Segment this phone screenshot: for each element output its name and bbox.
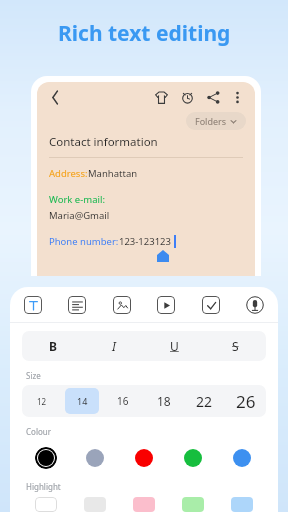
button[interactable]: Highlight	[70, 497, 119, 512]
button[interactable]: Highlight	[168, 497, 217, 512]
staticText: I	[112, 338, 116, 354]
staticText: Address:	[49, 167, 88, 180]
staticText: 12	[37, 396, 47, 407]
staticText: 18	[157, 393, 171, 409]
staticText: Folders	[195, 115, 227, 127]
button[interactable]: 12	[25, 388, 59, 414]
button[interactable]: Colour	[168, 441, 217, 475]
button[interactable]: I	[83, 331, 144, 361]
button[interactable]: 18	[146, 388, 181, 414]
staticText: 26	[236, 390, 256, 413]
staticText: 16	[117, 394, 129, 408]
staticText: Colour	[26, 426, 52, 437]
staticText: Phone number:	[49, 235, 119, 248]
button[interactable]: Theme	[151, 87, 171, 107]
button[interactable]: Colour	[22, 441, 70, 475]
staticText: Size	[26, 370, 41, 381]
staticText: U	[170, 338, 179, 354]
staticText: S	[232, 338, 239, 354]
button[interactable]: Insert video	[157, 296, 175, 314]
button[interactable]: Voice recording	[246, 296, 264, 314]
staticText: Rich text editing	[58, 19, 231, 48]
button[interactable]: Reminder	[177, 87, 197, 107]
button[interactable]: Text format	[24, 296, 42, 314]
button[interactable]: Folders	[186, 112, 246, 130]
button[interactable]: U	[144, 331, 205, 361]
button[interactable]: B	[22, 331, 83, 361]
staticText: 22	[196, 392, 213, 411]
button[interactable]: Checklist	[202, 296, 220, 314]
button[interactable]: 14	[65, 388, 99, 414]
button[interactable]: Share	[203, 87, 223, 107]
staticText: 123-123123	[119, 235, 171, 248]
button[interactable]: 22	[187, 388, 222, 414]
staticText: Highlight	[26, 481, 61, 492]
staticText: Maria@Gmail	[49, 209, 110, 222]
button[interactable]: Back	[45, 87, 65, 107]
button[interactable]: Colour	[70, 441, 119, 475]
staticText: Work e-mail:	[49, 193, 105, 206]
staticText: 14	[77, 395, 88, 407]
button[interactable]: Highlight	[217, 497, 266, 512]
staticText: Manhattan	[88, 167, 138, 180]
button[interactable]: 26	[228, 388, 263, 414]
staticText: B	[49, 338, 57, 354]
button[interactable]: Colour	[119, 441, 168, 475]
button[interactable]: Highlight	[119, 497, 168, 512]
button[interactable]: More options	[227, 87, 247, 107]
button[interactable]: Paragraph	[68, 296, 86, 314]
button[interactable]: 16	[105, 388, 140, 414]
button[interactable]: Colour	[217, 441, 266, 475]
button[interactable]: Highlight	[22, 497, 70, 512]
button[interactable]: Insert image	[113, 296, 131, 314]
button[interactable]: S	[205, 331, 266, 361]
staticText: Contact information	[49, 134, 158, 150]
